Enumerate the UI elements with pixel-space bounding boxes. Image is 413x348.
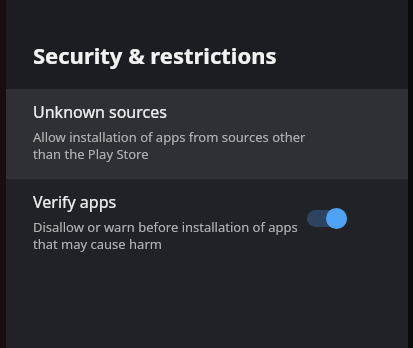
staticText: Security & restrictions — [33, 40, 277, 70]
staticText: Verify apps — [33, 191, 117, 213]
staticText: Allow installation of apps from sources … — [33, 128, 319, 163]
button[interactable]: Verify apps — [6, 179, 408, 269]
staticText: Unknown sources — [33, 101, 167, 123]
button[interactable]: Verify apps toggle — [303, 203, 355, 233]
button[interactable]: Unknown sources — [6, 89, 408, 179]
staticText: Disallow or warn before installation of … — [33, 218, 319, 253]
